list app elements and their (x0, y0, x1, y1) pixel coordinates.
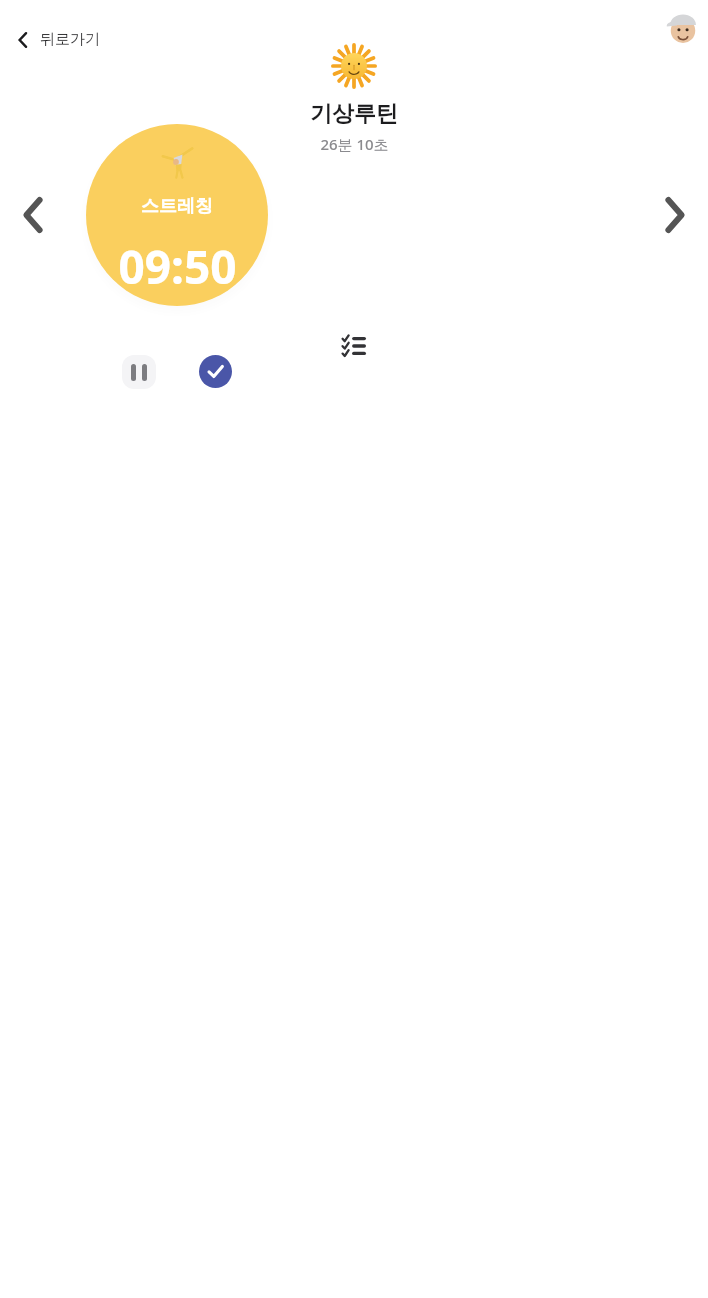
button[interactable]: 프로필 (666, 11, 700, 45)
button[interactable]: 뒤로가기 (8, 24, 108, 55)
button[interactable]: 스트레칭 (86, 124, 268, 306)
button[interactable]: 이전 (8, 190, 58, 240)
staticText: 26분 10초 (320, 134, 389, 154)
staticText: 기상루틴 (310, 100, 398, 128)
staticText: 스트레칭 (141, 195, 213, 218)
staticText: 09:50 (118, 235, 237, 298)
button[interactable]: 일시정지 (122, 355, 156, 389)
button[interactable]: 완료 (199, 355, 232, 388)
button[interactable]: 다음 (650, 190, 700, 240)
button[interactable]: 목록 (330, 322, 378, 370)
staticText: 뒤로가기 (40, 30, 100, 49)
